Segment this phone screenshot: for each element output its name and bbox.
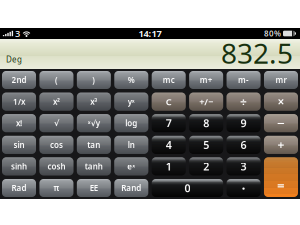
button[interactable]: Rad xyxy=(2,179,36,197)
staticText: sinh xyxy=(11,161,27,172)
button[interactable]: eˣ xyxy=(114,157,148,175)
button[interactable]: ln xyxy=(114,136,148,154)
staticText: +/− xyxy=(199,95,213,108)
button[interactable]: C xyxy=(152,93,186,111)
button[interactable]: ˣ√y xyxy=(77,114,111,132)
staticText: x! xyxy=(16,118,22,128)
button[interactable]: % xyxy=(114,71,148,89)
button[interactable]: ) xyxy=(77,71,111,89)
button[interactable]: sinh xyxy=(2,157,36,175)
staticText: yˣ xyxy=(128,96,135,107)
staticText: √ xyxy=(54,119,59,128)
button[interactable]: 0 xyxy=(152,179,223,197)
button[interactable]: · xyxy=(227,179,261,197)
staticText: m- xyxy=(238,75,249,85)
button[interactable]: 4 xyxy=(152,136,186,154)
staticText: − xyxy=(277,114,285,132)
button[interactable]: cosh xyxy=(39,157,73,175)
staticText: + xyxy=(277,137,284,153)
staticText: cosh xyxy=(47,161,65,172)
button[interactable]: m+ xyxy=(189,71,223,89)
staticText: = xyxy=(277,176,285,194)
button[interactable]: tanh xyxy=(77,157,111,175)
button[interactable]: = xyxy=(264,157,298,197)
button[interactable]: cos xyxy=(39,136,73,154)
staticText: ÷ xyxy=(240,94,247,109)
button[interactable]: 2nd xyxy=(2,71,36,89)
staticText: 0 xyxy=(184,181,190,195)
staticText: 2nd xyxy=(11,75,26,85)
button[interactable]: 9 xyxy=(226,114,260,132)
button[interactable]: 3 xyxy=(226,157,260,175)
staticText: 3 xyxy=(241,159,247,173)
staticText: 1 xyxy=(166,159,172,173)
button[interactable]: 1 xyxy=(152,157,186,175)
button[interactable]: m- xyxy=(226,71,260,89)
button[interactable]: 8 xyxy=(189,114,223,132)
staticText: EE xyxy=(90,183,98,193)
button[interactable]: x³ xyxy=(77,93,111,111)
staticText: 2 xyxy=(203,159,209,173)
staticText: ) xyxy=(92,75,95,85)
staticText: 4 xyxy=(166,138,172,152)
button[interactable]: sin xyxy=(2,136,36,154)
staticText: 6 xyxy=(241,138,247,152)
staticText: eˣ xyxy=(127,161,135,172)
staticText: % xyxy=(128,75,135,85)
button[interactable]: π xyxy=(39,179,73,197)
button[interactable]: EE xyxy=(77,179,111,197)
staticText: 3 xyxy=(15,27,20,40)
staticText: C xyxy=(166,95,172,108)
button[interactable]: tan xyxy=(77,136,111,154)
button[interactable]: x² xyxy=(39,93,73,111)
staticText: ( xyxy=(55,75,58,85)
staticText: 5 xyxy=(203,138,209,152)
button[interactable]: +/− xyxy=(189,93,223,111)
staticText: 7 xyxy=(166,116,172,130)
staticText: ˣ√y xyxy=(88,118,100,128)
staticText: cos xyxy=(50,139,63,150)
button[interactable]: ( xyxy=(39,71,73,89)
staticText: Deg xyxy=(6,54,22,65)
button[interactable]: x! xyxy=(2,114,36,132)
staticText: Rad xyxy=(11,183,26,193)
staticText: π xyxy=(53,183,59,193)
button[interactable]: 5 xyxy=(189,136,223,154)
staticText: tan xyxy=(87,139,100,150)
staticText: x² xyxy=(53,96,60,107)
button[interactable]: 1/x xyxy=(2,93,36,111)
staticText: ln xyxy=(128,139,135,150)
button[interactable]: mc xyxy=(152,71,186,89)
button[interactable]: √ xyxy=(39,114,73,132)
staticText: Rand xyxy=(121,183,141,193)
staticText: log xyxy=(125,118,137,128)
button[interactable]: × xyxy=(264,93,298,111)
staticText: 80% xyxy=(264,28,281,39)
button[interactable]: 2 xyxy=(189,157,223,175)
button[interactable]: 6 xyxy=(226,136,260,154)
button[interactable]: log xyxy=(114,114,148,132)
staticText: 8 xyxy=(203,116,209,130)
button[interactable]: 7 xyxy=(152,114,186,132)
staticText: 832.5 xyxy=(221,34,293,72)
button[interactable]: mr xyxy=(264,71,298,89)
button[interactable]: yˣ xyxy=(114,93,148,111)
staticText: mc xyxy=(163,75,175,85)
staticText: 9 xyxy=(241,116,247,130)
staticText: m+ xyxy=(200,75,213,85)
staticText: mr xyxy=(275,75,286,85)
staticText: tanh xyxy=(85,161,103,172)
staticText: × xyxy=(277,94,284,109)
staticText: 1/x xyxy=(13,96,25,107)
button[interactable]: − xyxy=(264,114,298,132)
staticText: 14:17 xyxy=(138,27,161,40)
staticText: x³ xyxy=(90,96,97,107)
button[interactable]: Rand xyxy=(114,179,148,197)
staticText: sin xyxy=(13,139,24,150)
staticText: · xyxy=(242,178,246,198)
button[interactable]: + xyxy=(264,136,298,154)
button[interactable]: ÷ xyxy=(226,93,260,111)
